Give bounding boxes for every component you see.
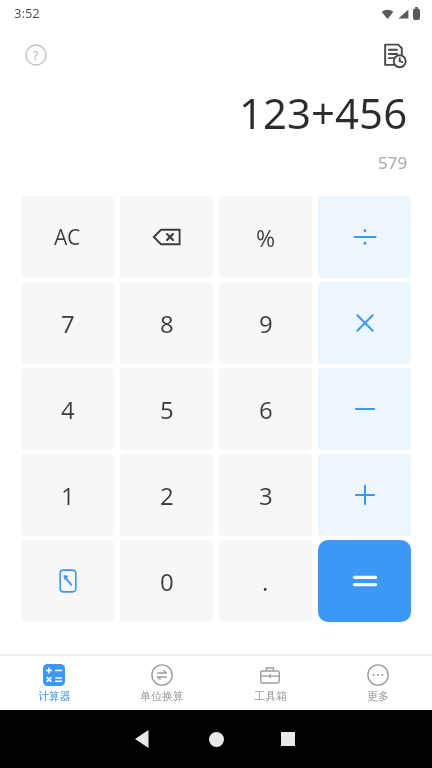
button[interactable]: Equals: [318, 540, 411, 622]
other: Home: [209, 732, 224, 747]
staticText: AC: [54, 223, 81, 252]
button[interactable]: %: [219, 196, 312, 278]
staticText: 3: [259, 479, 273, 512]
button[interactable]: 6: [219, 368, 312, 450]
staticText: 4: [61, 393, 75, 426]
button[interactable]: 9: [219, 282, 312, 364]
staticText: 更多: [367, 689, 389, 703]
button[interactable]: .: [219, 540, 312, 622]
button[interactable]: 计算器: [0, 656, 108, 710]
staticText: 579: [378, 151, 408, 174]
staticText: 3:52: [14, 4, 40, 22]
button[interactable]: 更多: [324, 656, 432, 710]
staticText: 1: [61, 479, 75, 512]
button[interactable]: 工具箱: [216, 656, 324, 710]
button[interactable]: 0: [120, 540, 213, 622]
staticText: ?: [33, 47, 39, 63]
staticText: 8: [160, 307, 174, 340]
button[interactable]: 3: [219, 454, 312, 536]
button[interactable]: Insert answer: [21, 540, 114, 622]
staticText: .: [262, 565, 269, 598]
button[interactable]: Divide: [318, 196, 411, 278]
button[interactable]: Help: [16, 35, 56, 75]
button[interactable]: 7: [21, 282, 114, 364]
button[interactable]: AC: [21, 196, 114, 278]
button[interactable]: 4: [21, 368, 114, 450]
button[interactable]: 2: [120, 454, 213, 536]
button[interactable]: Backspace: [120, 196, 213, 278]
staticText: 123+456: [239, 84, 408, 141]
staticText: 计算器: [38, 689, 71, 703]
button[interactable]: History: [372, 33, 416, 77]
staticText: %: [256, 222, 276, 253]
staticText: 6: [259, 393, 273, 426]
staticText: 0: [160, 565, 174, 598]
staticText: 2: [160, 479, 174, 512]
button[interactable]: Plus: [318, 454, 411, 536]
staticText: 单位换算: [140, 689, 184, 703]
other: Back: [135, 730, 153, 748]
staticText: 5: [160, 393, 174, 426]
staticText: 7: [61, 307, 75, 340]
staticText: 9: [259, 307, 273, 340]
staticText: 工具箱: [254, 689, 287, 703]
button[interactable]: Minus: [318, 368, 411, 450]
button[interactable]: 5: [120, 368, 213, 450]
button[interactable]: 8: [120, 282, 213, 364]
button[interactable]: 单位换算: [108, 656, 216, 710]
button[interactable]: 1: [21, 454, 114, 536]
button[interactable]: Multiply: [318, 282, 411, 364]
